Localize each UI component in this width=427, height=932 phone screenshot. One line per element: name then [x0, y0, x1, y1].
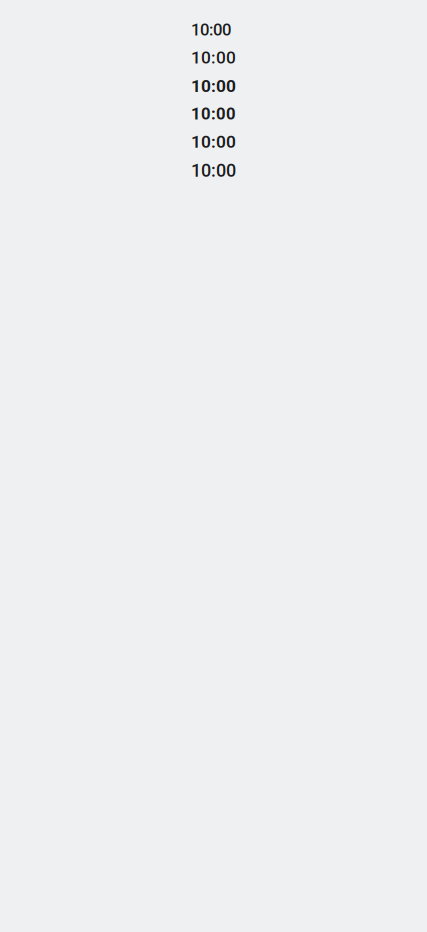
- staticText: 10:00: [191, 76, 236, 96]
- staticText: 10:00: [191, 104, 236, 124]
- staticText: 10:00: [191, 20, 231, 39]
- staticText: 10:00: [191, 132, 236, 152]
- staticText: 10:00: [191, 160, 236, 181]
- staticText: 10:00: [191, 47, 236, 68]
